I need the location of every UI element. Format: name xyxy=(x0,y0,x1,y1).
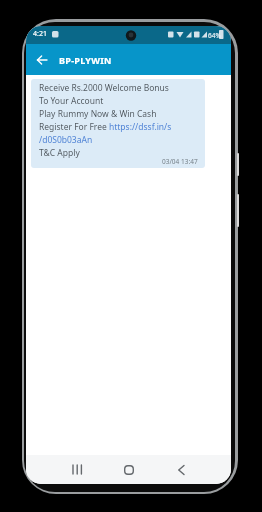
staticText: BP-PLYWIN xyxy=(59,54,112,66)
staticText: 4:21 xyxy=(33,29,47,39)
button[interactable] xyxy=(107,455,151,484)
button[interactable]: Receive Rs.2000 Welcome Bonus To Your Ac… xyxy=(31,79,205,168)
button[interactable] xyxy=(55,455,99,484)
staticText: Receive Rs.2000 Welcome Bonus To Your Ac… xyxy=(39,82,172,159)
button[interactable] xyxy=(159,455,203,484)
staticText: 03/04 13:47 xyxy=(162,157,198,166)
button[interactable] xyxy=(26,44,57,75)
button[interactable]: BP-PLYWIN xyxy=(26,44,231,75)
staticText: 64% xyxy=(208,31,221,40)
